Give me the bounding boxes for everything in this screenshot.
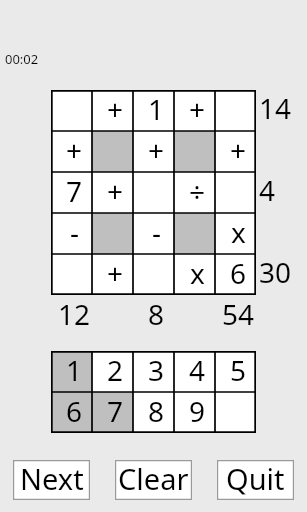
button[interactable]: Blocked square row 2 column 4 — [174, 131, 215, 172]
staticText: + — [148, 131, 165, 169]
staticText: 12 — [58, 295, 91, 325]
staticText: 6 — [230, 254, 247, 292]
staticText: 4 — [259, 171, 276, 209]
button[interactable]: Square row 4 column 5: x — [215, 213, 256, 254]
staticText: 7 — [107, 392, 124, 430]
button[interactable]: Square row 3 column 1: 7 — [51, 172, 92, 213]
button[interactable]: Blocked square row 4 column 4 — [174, 213, 215, 254]
staticText: ÷ — [189, 172, 206, 210]
button[interactable]: Square row 5 column 5: 6 — [215, 254, 256, 295]
button[interactable]: Empty square row 3 column 3 — [133, 172, 174, 213]
button[interactable]: Clear — [115, 460, 192, 500]
button[interactable]: Square row 5 column 2: + — [92, 254, 133, 295]
button[interactable]: Square row 2 column 5: + — [215, 131, 256, 172]
staticText: 7 — [66, 172, 83, 210]
button[interactable]: Square row 2 column 1: + — [51, 131, 92, 172]
button[interactable]: Number 4 — [174, 351, 215, 392]
staticText: 14 — [259, 89, 292, 127]
button[interactable]: Empty tile — [215, 392, 256, 433]
staticText: + — [107, 90, 124, 128]
button[interactable]: Square row 1 column 4: + — [174, 90, 215, 131]
staticText: 8 — [148, 392, 165, 430]
button[interactable]: Number 8 — [133, 392, 174, 433]
staticText: 54 — [222, 295, 255, 325]
staticText: Next — [20, 459, 84, 498]
staticText: 5 — [230, 351, 247, 389]
staticText: x — [231, 213, 246, 251]
button[interactable]: Next — [13, 460, 90, 500]
staticText: 6 — [66, 392, 83, 430]
staticText: 1 — [148, 90, 165, 128]
staticText: + — [230, 131, 247, 169]
staticText: x — [190, 254, 205, 292]
button[interactable]: Number 3 — [133, 351, 174, 392]
button[interactable]: Blocked square row 2 column 2 — [92, 131, 133, 172]
button[interactable]: Number 6 — [51, 392, 92, 433]
button[interactable]: Number 2 — [92, 351, 133, 392]
staticText: Quit — [226, 459, 285, 498]
staticText: 2 — [107, 351, 124, 389]
button[interactable]: Empty square row 1 column 1 — [51, 90, 92, 131]
button[interactable]: Number 5 — [215, 351, 256, 392]
button[interactable]: Empty square row 5 column 3 — [133, 254, 174, 295]
button[interactable]: Quit — [217, 460, 294, 500]
button[interactable]: Number 9 — [174, 392, 215, 433]
button[interactable]: Empty square row 3 column 5 — [215, 172, 256, 213]
staticText: 8 — [148, 295, 165, 325]
staticText: + — [107, 254, 124, 292]
staticText: - — [152, 213, 162, 251]
staticText: Clear — [118, 459, 189, 498]
staticText: + — [189, 90, 206, 128]
button[interactable]: Empty square row 1 column 5 — [215, 90, 256, 131]
staticText: 1 — [66, 351, 83, 389]
button[interactable]: Square row 1 column 2: + — [92, 90, 133, 131]
button[interactable]: Blocked square row 4 column 2 — [92, 213, 133, 254]
button[interactable]: Square row 1 column 3: 1 — [133, 90, 174, 131]
button[interactable]: Square row 3 column 4: ÷ — [174, 172, 215, 213]
button[interactable]: Square row 4 column 1: - — [51, 213, 92, 254]
button[interactable]: Empty square row 5 column 1 — [51, 254, 92, 295]
staticText: 4 — [189, 351, 206, 389]
staticText: + — [107, 172, 124, 210]
button[interactable]: Square row 3 column 2: + — [92, 172, 133, 213]
staticText: 3 — [148, 351, 165, 389]
button[interactable]: Square row 2 column 3: + — [133, 131, 174, 172]
staticText: - — [70, 213, 80, 251]
staticText: 9 — [189, 392, 206, 430]
staticText: 00:02 — [5, 50, 39, 68]
staticText: 30 — [259, 253, 292, 291]
staticText: + — [66, 131, 83, 169]
button[interactable]: Number 7 — [92, 392, 133, 433]
button[interactable]: Square row 5 column 4: x — [174, 254, 215, 295]
button[interactable]: Square row 4 column 3: - — [133, 213, 174, 254]
button[interactable]: Number 1 — [51, 351, 92, 392]
